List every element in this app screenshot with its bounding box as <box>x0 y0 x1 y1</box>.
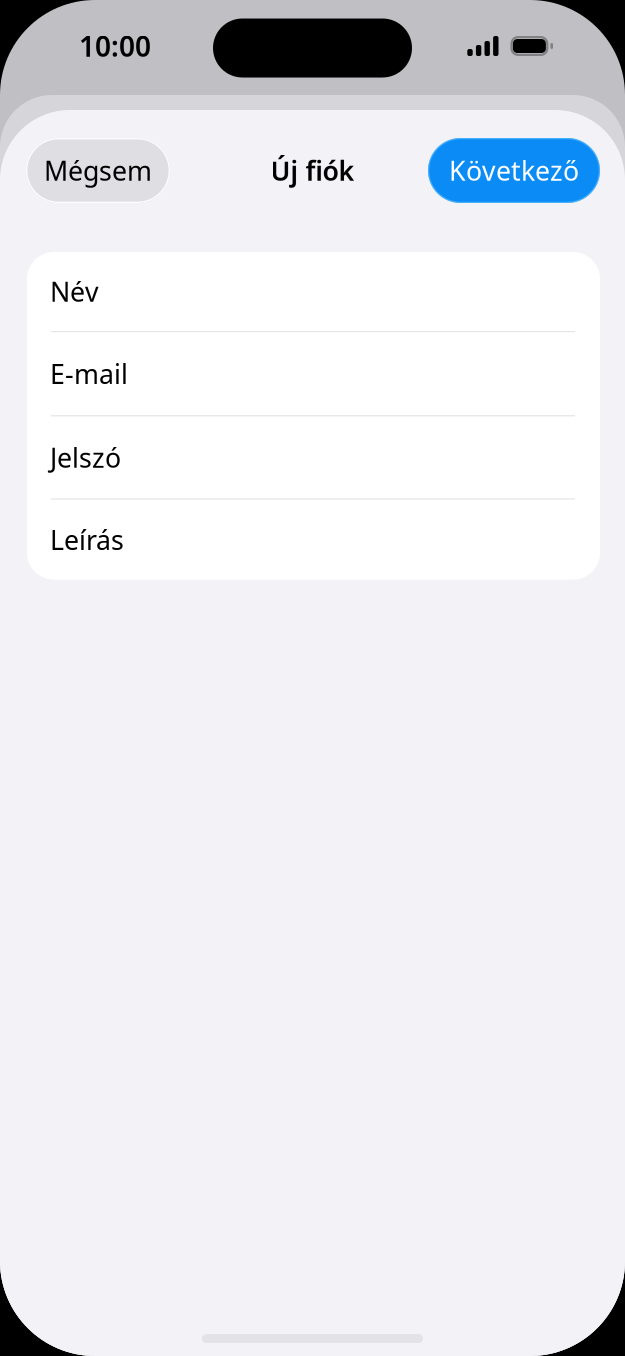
staticText: Leírás <box>50 522 124 557</box>
button[interactable]: E-mail <box>27 332 600 415</box>
button[interactable]: Jelszó <box>27 416 600 498</box>
staticText: Jelszó <box>50 440 121 475</box>
button[interactable]: Mégsem <box>26 138 170 203</box>
button[interactable]: Név <box>27 252 600 331</box>
button[interactable]: Leírás <box>27 500 600 580</box>
staticText: 10:00 <box>79 27 151 65</box>
staticText: E-mail <box>50 356 128 391</box>
staticText: Új fiók <box>270 153 354 188</box>
staticText: Következő <box>449 153 579 188</box>
staticText: Mégsem <box>44 153 152 188</box>
staticText: Név <box>50 274 99 309</box>
button[interactable]: Következő <box>428 138 600 203</box>
